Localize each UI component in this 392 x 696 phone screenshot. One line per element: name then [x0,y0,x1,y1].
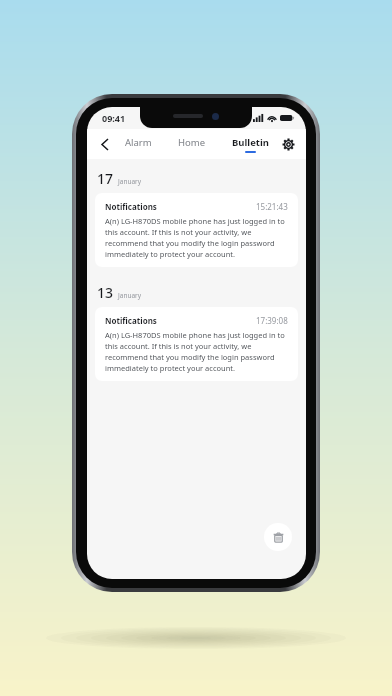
staticText: Alarm [125,136,152,149]
staticText: A(n) LG-H870DS mobile phone has just log… [105,330,288,373]
staticText: Home [178,136,206,149]
button[interactable]: Notifications [95,193,298,267]
staticText: January [118,291,142,300]
staticText: A(n) LG-H870DS mobile phone has just log… [105,216,288,259]
staticText: 17 [97,169,114,188]
staticText: Bulletin [232,136,269,149]
button[interactable]: Delete [264,523,292,551]
staticText: Notifications [105,201,157,212]
button[interactable]: Notifications [95,307,298,381]
button[interactable]: Back [93,132,117,156]
staticText: Notifications [105,315,157,326]
staticText: 17:39:08 [256,315,288,326]
button[interactable]: Home [176,134,208,155]
staticText: 15:21:43 [256,201,288,212]
button[interactable]: Alarm [123,134,154,155]
staticText: January [118,177,142,186]
button[interactable]: Bulletin [230,134,271,155]
staticText: 09:41 [102,112,126,124]
button[interactable]: Settings [276,132,300,156]
staticText: 13 [97,283,114,302]
